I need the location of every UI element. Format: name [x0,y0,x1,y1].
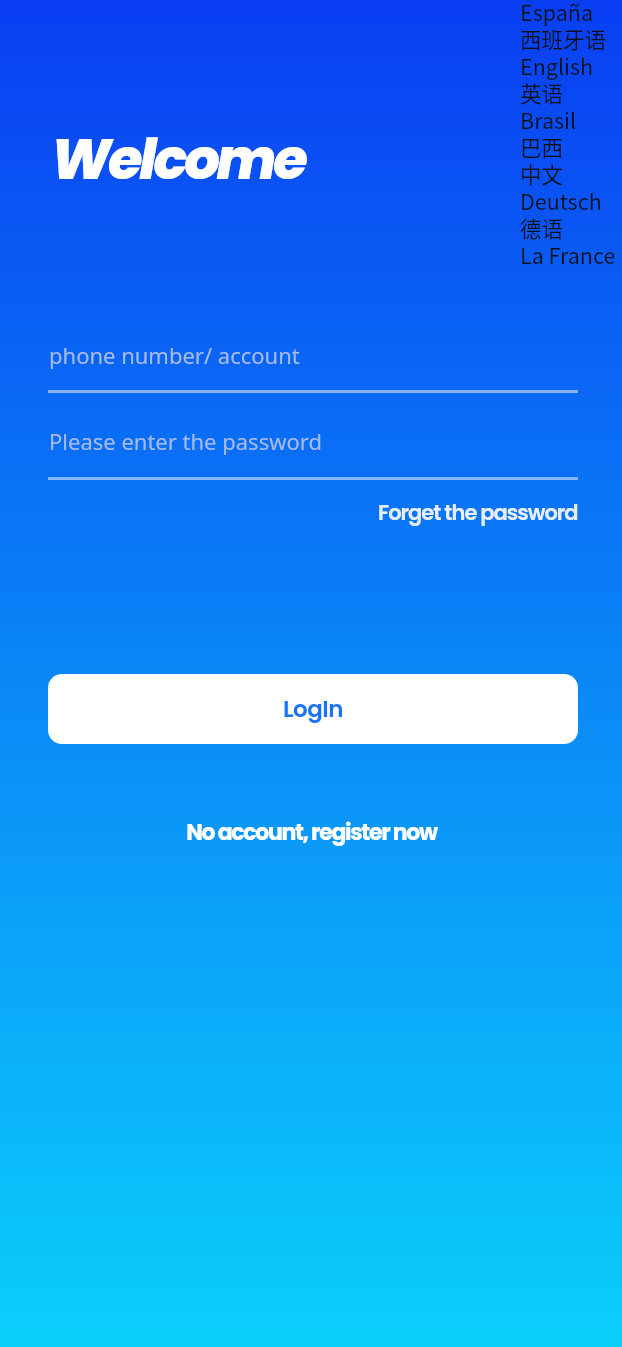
staticText: Welcome [51,120,305,198]
button[interactable]: España 西班牙语 English 英语 Brasil 巴西 中文 Deut… [520,0,616,270]
button[interactable]: Forget the password [378,498,578,527]
button[interactable]: phone number/ account [49,340,300,370]
button[interactable]: LogIn [48,674,578,744]
staticText: LogIn [283,693,343,725]
button[interactable]: No account, register now [186,817,437,848]
button[interactable]: Please enter the password [49,426,322,456]
